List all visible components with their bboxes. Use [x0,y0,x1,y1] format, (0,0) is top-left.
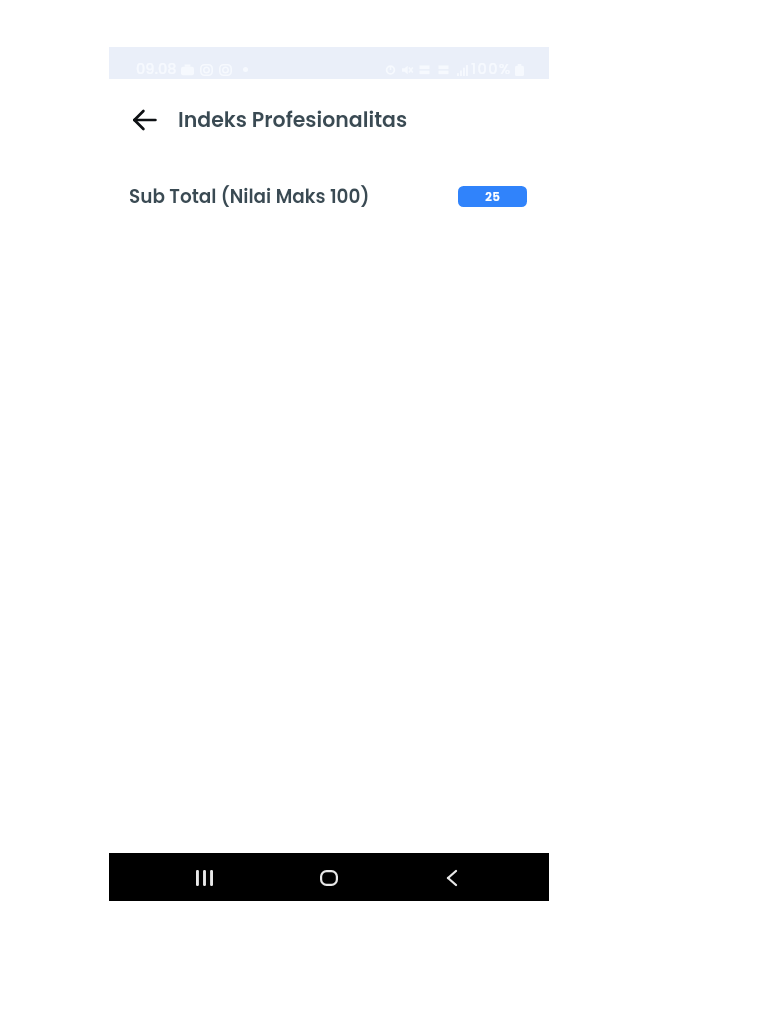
button[interactable]: Recent apps [172,854,237,902]
button[interactable]: Back [122,97,167,142]
staticText: Indeks Profesionalitas [178,105,408,134]
staticText: Sub Total (Nilai Maks 100) [129,184,370,210]
staticText: 09.08 [136,59,177,79]
button[interactable]: Back [419,854,484,902]
button[interactable]: 25 [458,186,527,207]
staticText: 100% [471,59,512,79]
button[interactable]: Home [296,854,361,902]
staticText: 25 [485,189,501,205]
